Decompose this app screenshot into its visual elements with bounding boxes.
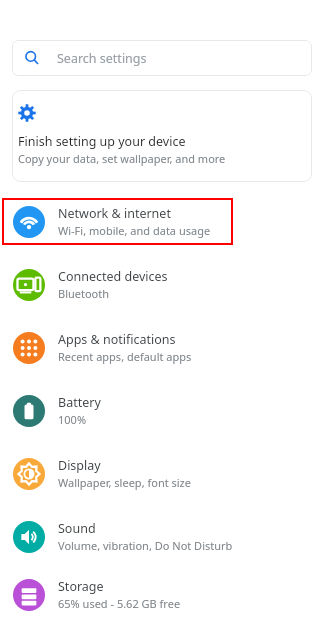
other: Search [24, 50, 40, 66]
button[interactable]: Storage [0, 568, 324, 621]
staticText: Network & internet [58, 205, 171, 222]
staticText: Battery [58, 394, 101, 411]
staticText: 100% [58, 412, 87, 427]
button[interactable]: Sound [0, 505, 324, 568]
button[interactable]: Search [12, 40, 312, 76]
staticText: Recent apps, default apps [58, 349, 192, 364]
staticText: Display [58, 457, 101, 474]
staticText: Apps & notifications [58, 331, 176, 348]
button[interactable]: Apps & notifications [0, 316, 324, 379]
staticText: Finish setting up your device [18, 133, 186, 150]
staticText: Connected devices [58, 268, 168, 285]
staticText: Copy your data, set wallpaper, and more [18, 151, 226, 166]
staticText: Bluetooth [58, 286, 110, 301]
button[interactable]: Connected devices [0, 253, 324, 316]
staticText: Search settings [57, 50, 147, 67]
staticText: Storage [58, 578, 104, 595]
staticText: 65% used - 5.62 GB free [58, 596, 181, 611]
staticText: Wi-Fi, mobile, and data usage [58, 223, 211, 238]
staticText: Sound [58, 520, 96, 537]
button[interactable]: Display [0, 442, 324, 505]
staticText: Wallpaper, sleep, font size [58, 475, 191, 490]
button[interactable]: Finish setting up your device [12, 90, 312, 182]
button[interactable]: Network & internet [0, 190, 324, 253]
button[interactable]: Battery [0, 379, 324, 442]
staticText: Volume, vibration, Do Not Disturb [58, 538, 233, 553]
